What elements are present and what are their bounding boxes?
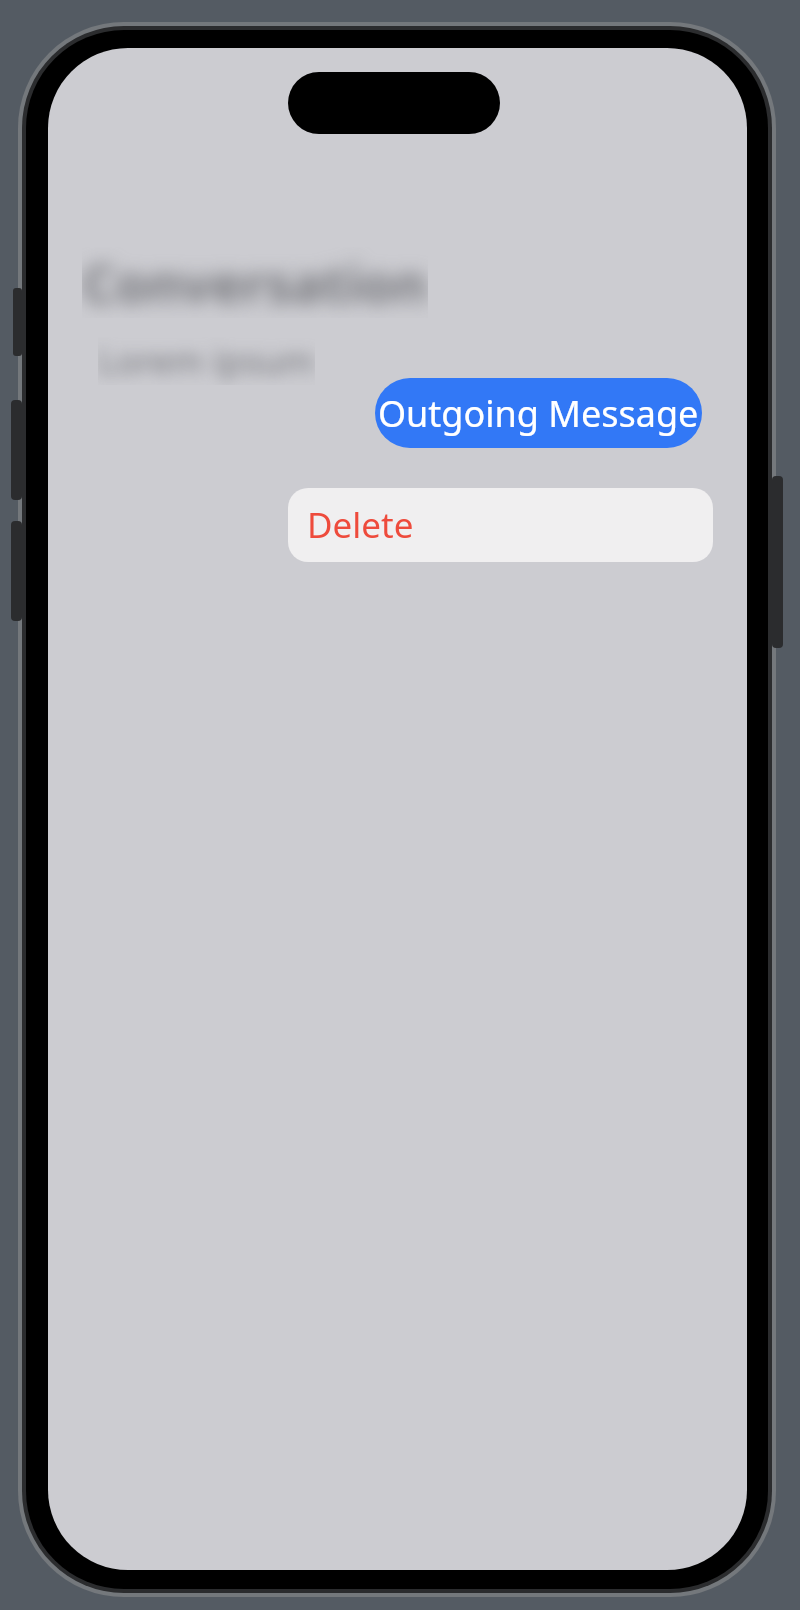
staticText: Conversation bbox=[82, 247, 428, 318]
staticText: Delete bbox=[307, 501, 414, 549]
button[interactable]: Delete bbox=[288, 488, 713, 562]
staticText: Lorem ipsum bbox=[98, 337, 315, 385]
staticText: Outgoing Message bbox=[378, 389, 699, 438]
button[interactable]: Outgoing Message bbox=[375, 378, 702, 448]
